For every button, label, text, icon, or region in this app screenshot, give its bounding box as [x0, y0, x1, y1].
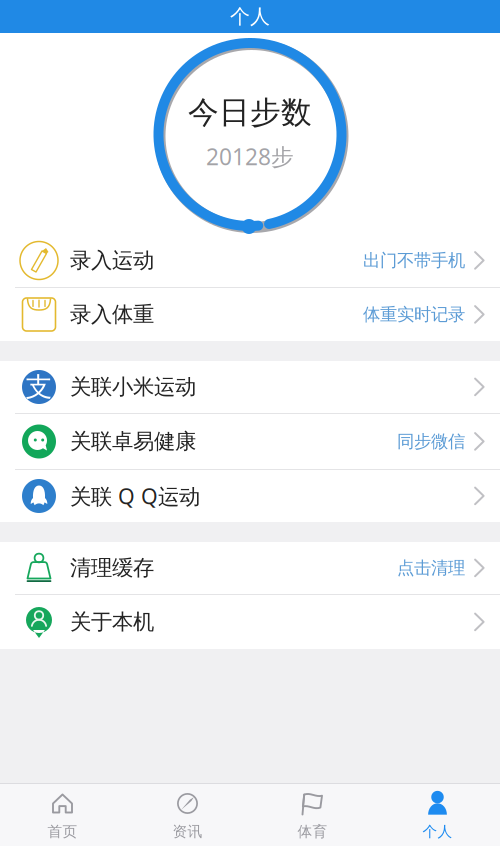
staticText: 20128步 — [206, 141, 294, 171]
staticText: 体育 — [297, 822, 327, 840]
staticText: 支 — [25, 371, 52, 403]
staticText: 体重实时记录 — [363, 304, 465, 325]
button[interactable]: 关联卓易健康 — [0, 414, 500, 469]
staticText: 录入运动 — [70, 247, 154, 274]
button[interactable]: 体育 — [250, 784, 375, 846]
button[interactable]: 录入运动 — [0, 234, 500, 287]
staticText: 关于本机 — [70, 609, 154, 635]
staticText: 清理缓存 — [70, 555, 154, 581]
button[interactable]: 关联 Q Q运动 — [0, 470, 500, 522]
staticText: 首页 — [47, 822, 77, 840]
staticText: 关联 Q Q运动 — [70, 482, 200, 510]
staticText: 录入体重 — [70, 301, 154, 328]
staticText: 点击清理 — [397, 557, 465, 579]
staticText: 个人 — [230, 4, 270, 29]
button[interactable]: 个人 — [375, 784, 500, 846]
staticText: 今日步数 — [188, 94, 312, 131]
staticText: 出门不带手机 — [363, 250, 465, 271]
button[interactable]: 录入体重 — [0, 288, 500, 341]
button[interactable]: 首页 — [0, 784, 125, 846]
button[interactable]: 资讯 — [125, 784, 250, 846]
staticText: 关联卓易健康 — [70, 428, 196, 455]
button[interactable]: 支 — [0, 361, 500, 413]
staticText: 个人 — [422, 822, 452, 840]
button[interactable]: 关于本机 — [0, 595, 500, 649]
button[interactable]: 清理缓存 — [0, 542, 500, 594]
staticText: 同步微信 — [397, 431, 465, 452]
staticText: 关联小米运动 — [70, 374, 196, 400]
staticText: 资讯 — [172, 822, 202, 840]
